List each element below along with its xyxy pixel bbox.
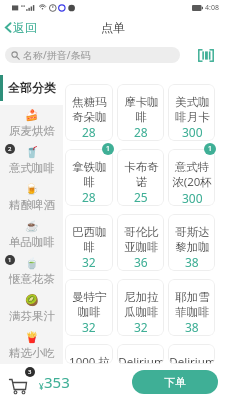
staticText: 🍵 — [25, 257, 39, 270]
button[interactable]: 焦糖玛 奇朵咖 — [65, 84, 113, 141]
button[interactable]: Delirium — [117, 344, 164, 364]
staticText: 1 — [8, 256, 12, 264]
staticText: 32 — [134, 319, 148, 335]
button[interactable]: 🍟 — [0, 327, 63, 364]
staticText: 拿铁咖 啡 — [72, 160, 107, 189]
button[interactable]: 🍵 — [0, 253, 63, 290]
staticText: 卡布奇 诺 — [124, 160, 159, 189]
staticText: 1 — [208, 144, 213, 154]
button[interactable]: 拿铁咖 啡 — [65, 149, 113, 206]
button[interactable]: 🍰 — [0, 105, 63, 142]
staticText: 28 — [134, 124, 148, 140]
staticText: ☕️ — [25, 220, 39, 233]
staticText: 精酿啤酒 — [9, 198, 55, 212]
staticText: 耶加雪 菲咖啡 — [175, 290, 210, 319]
staticText: 300 — [182, 124, 203, 140]
button[interactable]: 卡布奇 诺 — [117, 149, 164, 206]
button[interactable]: 尼加拉 瓜咖啡 — [117, 279, 164, 336]
staticText: 返回 — [13, 20, 37, 35]
button[interactable]: 🥤 — [0, 142, 63, 179]
button[interactable]: 美式咖 啡月卡 — [168, 84, 215, 141]
staticText: 尼加拉 瓜咖啡 — [124, 290, 159, 319]
button[interactable]: 耶加雪 菲咖啡 — [168, 279, 215, 336]
staticText: 曼特宁 咖啡 — [72, 290, 107, 319]
button[interactable]: 哥伦比 亚咖啡 — [117, 214, 164, 271]
staticText: ¥ — [39, 381, 44, 392]
button[interactable]: 返回 — [0, 17, 45, 38]
button[interactable]: 1000 拉 — [65, 344, 113, 364]
button[interactable]: 巴西咖 啡 — [65, 214, 113, 271]
staticText: 32 — [82, 254, 96, 270]
staticText: 惬意花茶 — [9, 272, 55, 286]
staticText: 精选小吃 — [9, 346, 55, 360]
staticText: 28 — [82, 189, 96, 205]
button[interactable]: 摩卡咖 啡 — [117, 84, 164, 141]
button[interactable]: Cart — [9, 370, 33, 394]
staticText: 36 — [134, 254, 148, 270]
staticText: 1 — [106, 144, 111, 154]
staticText: 32 — [82, 319, 96, 335]
staticText: 哥伦比 亚咖啡 — [124, 225, 159, 254]
staticText: Delirium — [169, 354, 215, 364]
staticText: 38 — [185, 254, 199, 270]
staticText: 意式咖啡 — [9, 161, 55, 175]
staticText: 28 — [82, 124, 96, 140]
staticText: 3 — [28, 368, 32, 376]
button[interactable]: 意式特 浓(20杯 — [168, 149, 215, 206]
button[interactable]: 🥝 — [0, 290, 63, 327]
staticText: 摩卡咖 啡 — [124, 95, 159, 124]
staticText: 25 — [134, 189, 148, 205]
staticText: 名称/拼音/条码 — [23, 48, 91, 62]
button[interactable]: 名称/拼音/条码 — [5, 47, 180, 63]
staticText: 353 — [44, 372, 70, 392]
staticText: 38 — [185, 319, 199, 335]
staticText: 巴西咖 啡 — [72, 225, 107, 254]
staticText: 意式特 浓(20杯 — [172, 160, 212, 190]
staticText: 1000 拉 — [69, 354, 110, 364]
button[interactable]: 🍺 — [0, 179, 63, 216]
staticText: 全部分类 — [8, 80, 56, 95]
staticText: 美式咖 啡月卡 — [175, 95, 210, 124]
staticText: 4:08 — [205, 3, 219, 13]
staticText: 2 — [8, 145, 12, 153]
staticText: 🍺 — [25, 183, 39, 196]
staticText: 焦糖玛 奇朵咖 — [72, 95, 107, 124]
button[interactable]: 哥斯达 黎加咖 — [168, 214, 215, 271]
button[interactable]: ☕️ — [0, 216, 63, 253]
button[interactable]: 全部分类 — [0, 70, 63, 105]
staticText: Delirium — [118, 354, 164, 364]
staticText: 下单 — [164, 375, 186, 389]
staticText: 🥤 — [25, 146, 39, 159]
staticText: 🍰 — [25, 109, 39, 122]
staticText: 🍟 — [25, 331, 39, 344]
staticText: 单品咖啡 — [9, 235, 55, 249]
staticText: 点单 — [101, 20, 125, 35]
staticText: 哥斯达 黎加咖 — [175, 225, 210, 254]
staticText: 原麦烘焙 — [9, 124, 55, 138]
staticText: 满芬果汁 — [9, 309, 55, 323]
staticText: 🥝 — [25, 294, 39, 307]
button[interactable]: Scan barcode — [195, 44, 217, 66]
button[interactable]: 曼特宁 咖啡 — [65, 279, 113, 336]
staticText: 300 — [182, 190, 203, 206]
button[interactable]: 下单 — [132, 370, 218, 394]
button[interactable]: Delirium — [168, 344, 215, 364]
